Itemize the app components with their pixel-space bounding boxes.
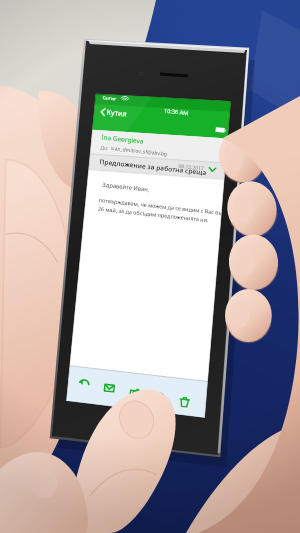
button[interactable]: Email message on phone held in hands (0, 0, 300, 533)
